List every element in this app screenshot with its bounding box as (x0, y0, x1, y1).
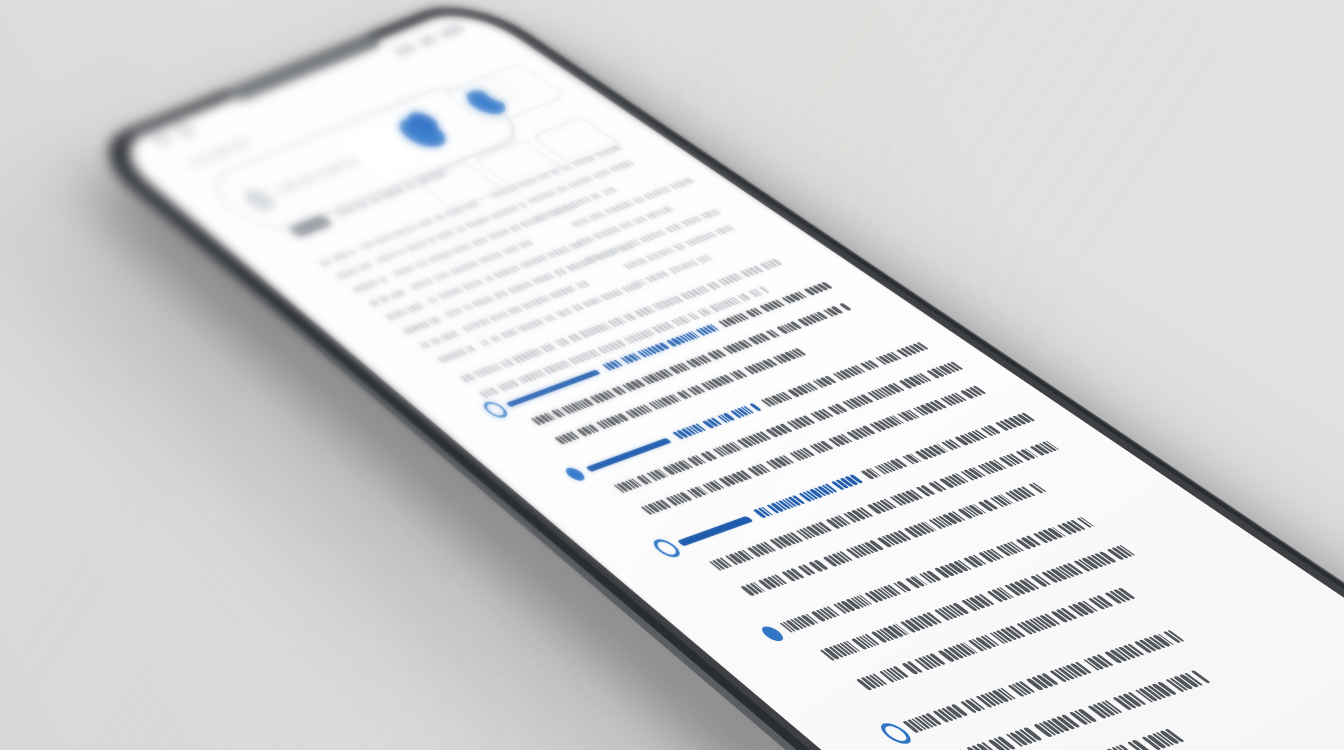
button[interactable]: Smartphone showing a list of search resu… (0, 0, 1344, 750)
